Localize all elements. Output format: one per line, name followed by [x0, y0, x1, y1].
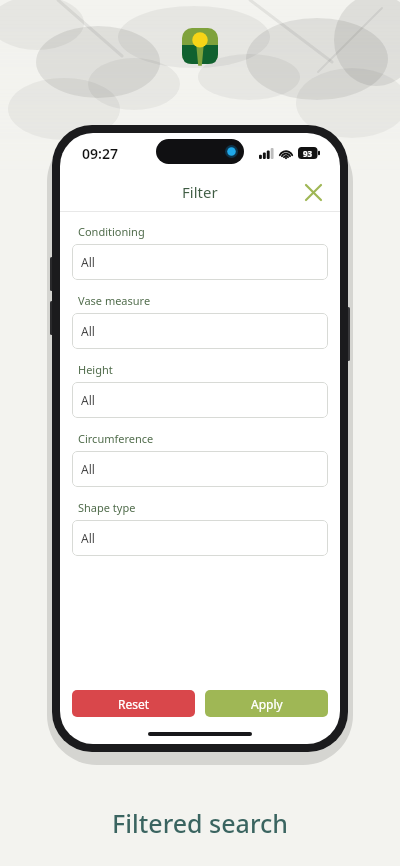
staticText: Filtered search	[0, 806, 400, 840]
button[interactable]: Apply	[205, 690, 328, 717]
staticText: Circumference	[78, 431, 154, 446]
staticText: Conditioning	[78, 224, 145, 239]
button[interactable]: All	[72, 520, 328, 556]
staticText: All	[81, 461, 95, 477]
staticText: 09:27	[82, 144, 118, 163]
button[interactable]: All	[72, 244, 328, 280]
staticText: All	[81, 323, 95, 339]
staticText: Filter	[182, 182, 218, 202]
button[interactable]: All	[72, 451, 328, 487]
staticText: Apply	[251, 696, 283, 712]
button[interactable]: All	[72, 313, 328, 349]
button[interactable]: All	[72, 382, 328, 418]
staticText: 93	[303, 148, 313, 159]
staticText: All	[81, 254, 95, 270]
staticText: Height	[78, 362, 113, 377]
staticText: Vase measure	[78, 293, 151, 308]
staticText: Reset	[118, 696, 150, 712]
staticText: All	[81, 530, 95, 546]
staticText: All	[81, 392, 95, 408]
staticText: Shape type	[78, 500, 136, 515]
button[interactable]: Reset	[72, 690, 195, 717]
button[interactable]: Close filter	[296, 175, 330, 209]
